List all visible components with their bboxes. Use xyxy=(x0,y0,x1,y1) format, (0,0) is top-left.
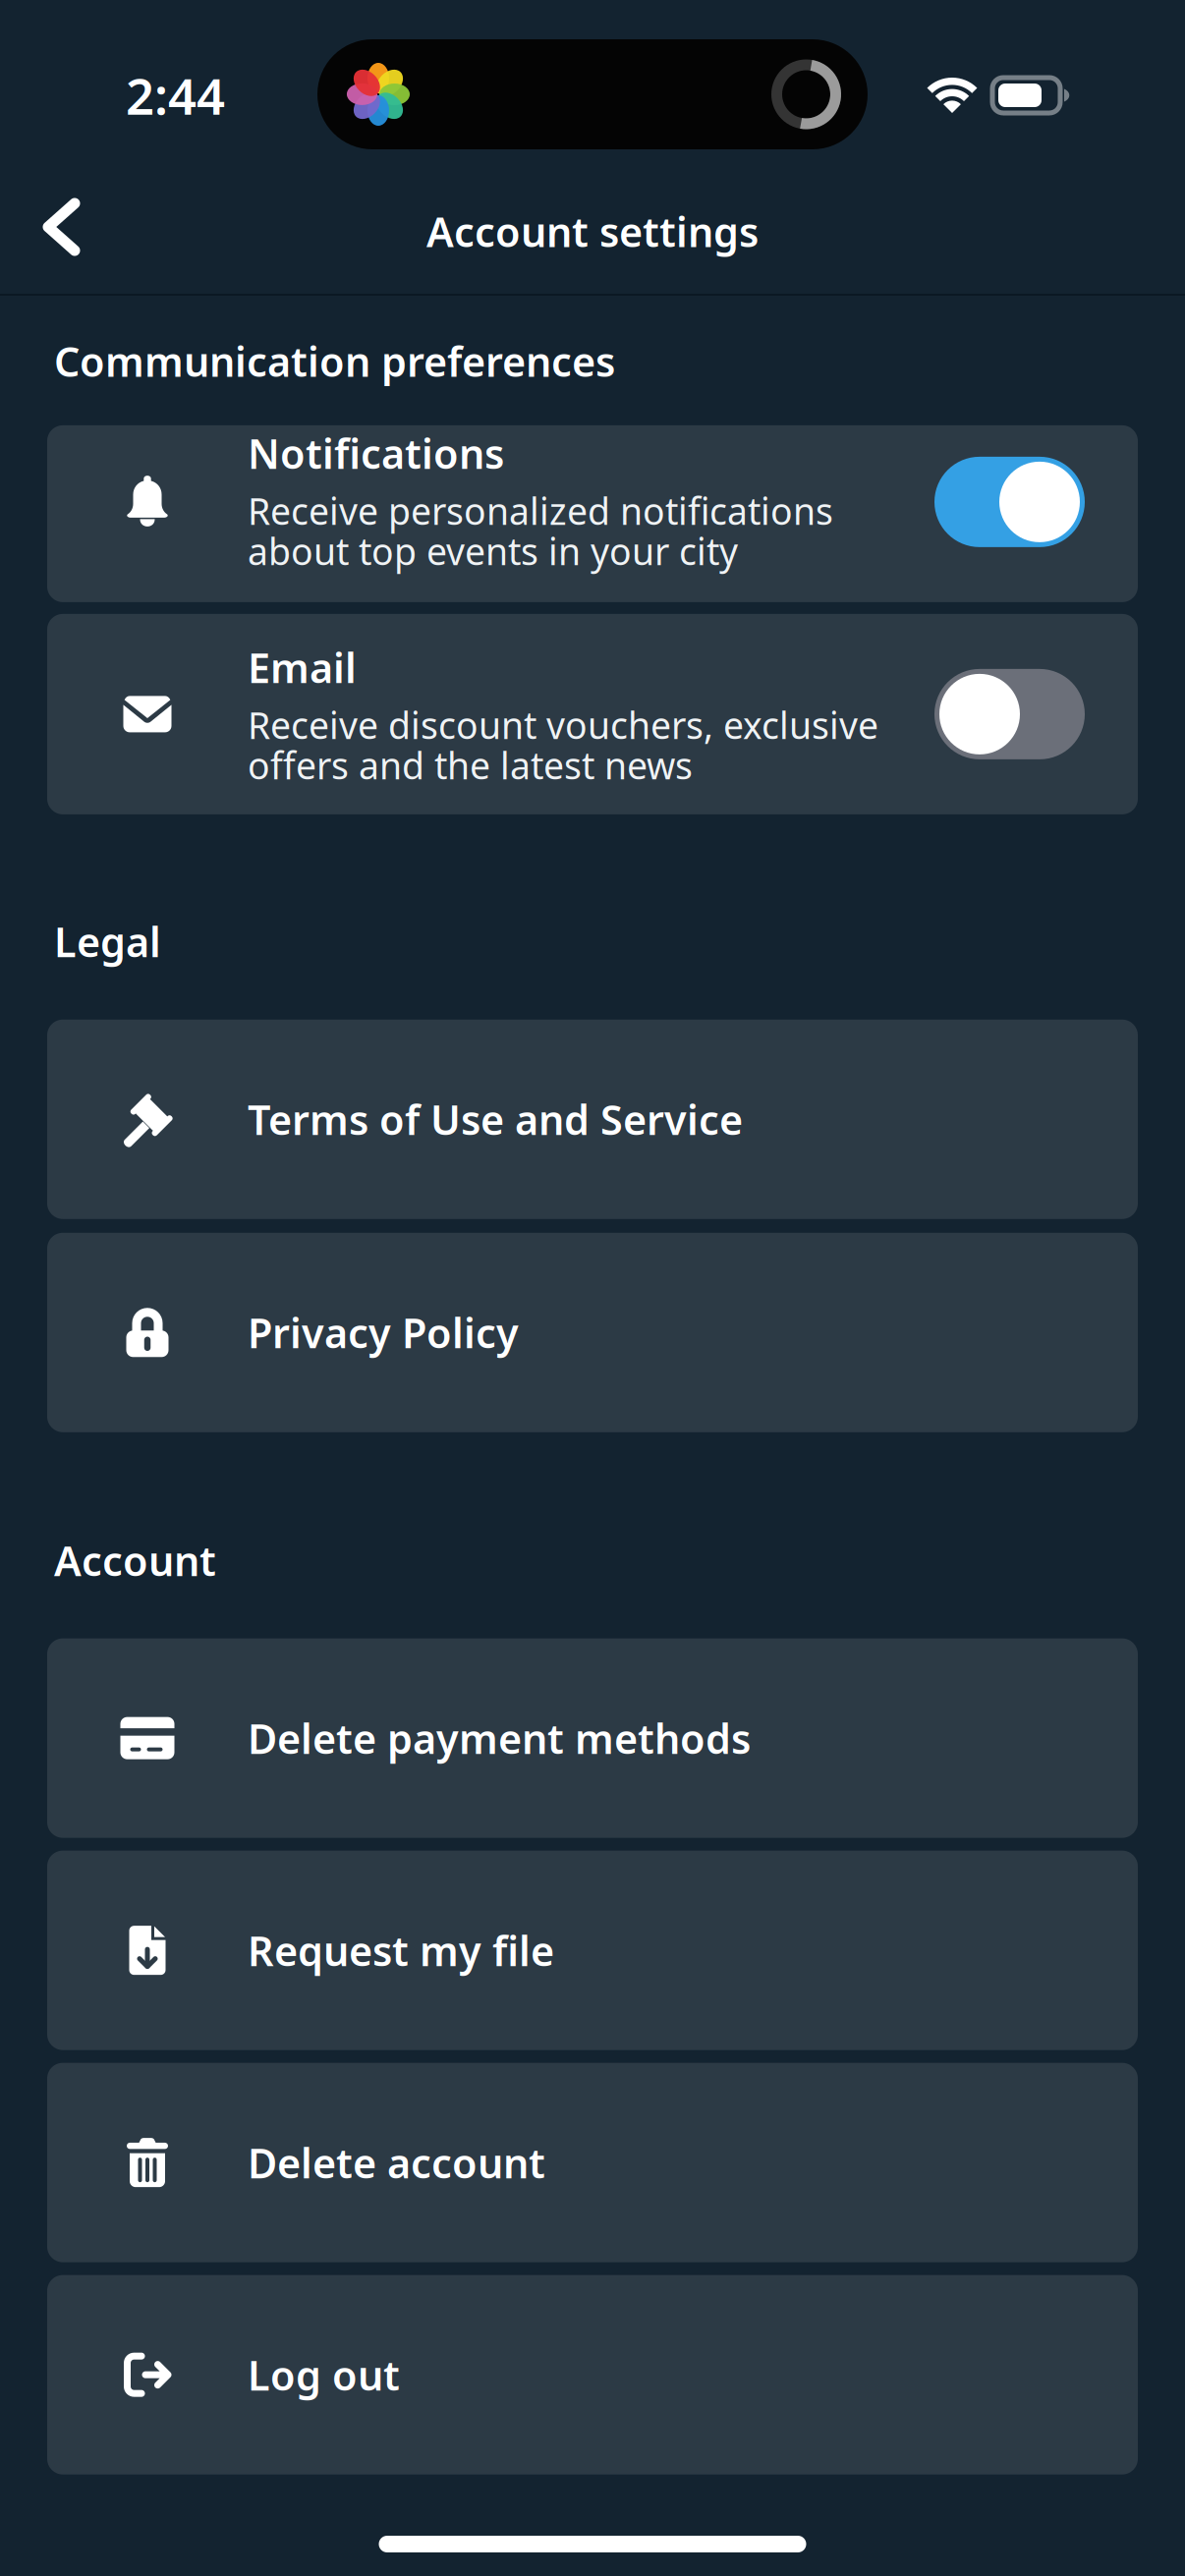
staticText: Privacy Policy xyxy=(248,1305,519,1359)
staticText: 2:44 xyxy=(126,62,225,128)
button[interactable]: Request my file xyxy=(47,1851,1138,2050)
button[interactable]: Back xyxy=(0,189,114,286)
staticText: Communication preferences xyxy=(54,334,615,388)
staticText: Delete account xyxy=(248,2136,545,2190)
button[interactable]: Log out xyxy=(47,2275,1138,2475)
staticText: offers and the latest news xyxy=(248,741,693,789)
button[interactable]: Privacy Policy xyxy=(47,1233,1138,1432)
button[interactable]: Terms of Use and Service xyxy=(47,1020,1138,1219)
button[interactable]: Delete payment methods xyxy=(47,1638,1138,1838)
staticText: Terms of Use and Service xyxy=(248,1092,743,1146)
staticText: about top events in your city xyxy=(248,526,738,575)
staticText: Request my file xyxy=(248,1923,554,1977)
staticText: Account xyxy=(54,1533,216,1587)
staticText: Log out xyxy=(248,2348,400,2402)
staticText: Notifications xyxy=(248,426,504,480)
staticText: Email xyxy=(248,640,357,694)
button[interactable]: Email xyxy=(47,614,1138,814)
staticText: Legal xyxy=(54,915,161,969)
staticText: Delete payment methods xyxy=(248,1711,751,1765)
button[interactable]: Notifications xyxy=(47,425,1138,602)
button[interactable]: Delete account xyxy=(47,2063,1138,2262)
staticText: Receive discount vouchers, exclusive xyxy=(248,700,878,749)
staticText: Receive personalized notifications xyxy=(248,486,833,535)
staticText: Account settings xyxy=(426,204,759,258)
